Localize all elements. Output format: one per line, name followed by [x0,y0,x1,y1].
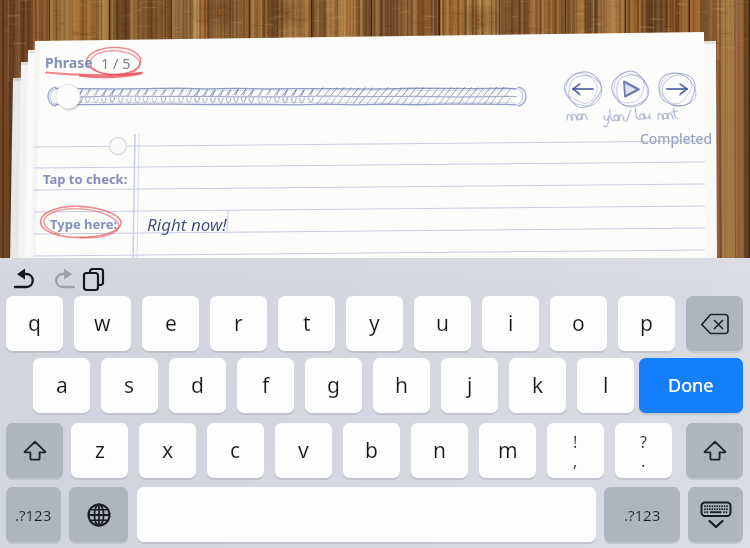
staticText: m [498,436,518,465]
button[interactable]: Redo [47,266,77,292]
staticText: d [191,371,204,400]
staticText: x [162,436,174,465]
staticText: u [436,309,449,338]
button[interactable]: s [101,358,158,413]
staticText: b [365,436,378,465]
button[interactable]: .?123 [6,487,61,542]
staticText: .?123 [624,505,661,525]
button[interactable]: x [139,423,196,478]
staticText: f [262,371,270,400]
staticText: k [532,371,544,400]
staticText: w [94,309,111,338]
staticText: Right now! [147,213,227,236]
button[interactable]: m [479,423,536,478]
staticText: o [572,309,585,338]
button[interactable]: Done [639,358,743,413]
staticText: . [641,450,646,472]
button[interactable]: h [373,358,430,413]
button[interactable]: n [411,423,468,478]
staticText: n [433,436,446,465]
staticText: ! [573,431,578,453]
button[interactable]: .?123 [604,487,680,542]
button[interactable]: Undo [12,266,42,292]
staticText: i [508,309,514,338]
button[interactable]: f [237,358,294,413]
button[interactable]: u [414,296,471,351]
button[interactable]: c [207,423,264,478]
button[interactable]: o [550,296,607,351]
staticText: a [56,371,68,400]
staticText: e [165,309,177,338]
button[interactable]: v [275,423,332,478]
button[interactable]: Hide keyboard [688,487,743,542]
staticText: Done [668,373,714,398]
staticText: Completed [640,129,713,148]
button[interactable]: d [169,358,226,413]
staticText: , [573,450,578,472]
staticText: t [303,309,311,338]
button[interactable]: b [343,423,400,478]
button[interactable]: k [509,358,566,413]
staticText: h [395,371,408,400]
staticText: 1 / 5 [101,53,131,73]
button[interactable]: t [278,296,335,351]
staticText: v [298,436,309,465]
staticText: s [124,371,135,400]
staticText: g [327,371,340,400]
button[interactable]: Backspace [686,296,743,351]
button[interactable]: q [6,296,63,351]
button[interactable]: z [71,423,128,478]
button[interactable]: ! [547,423,604,478]
button[interactable]: Change language [69,487,128,542]
staticText: z [95,436,105,465]
button[interactable]: a [33,358,90,413]
staticText: Tap to check: [43,170,128,188]
button[interactable]: i [482,296,539,351]
button[interactable]: p [618,296,675,351]
staticText: r [234,309,243,338]
button[interactable]: Paste [82,266,110,292]
staticText: q [28,309,41,338]
button[interactable]: ? [615,423,672,478]
staticText: j [467,371,473,400]
button[interactable]: j [441,358,498,413]
button[interactable]: Shift [686,423,743,478]
staticText: ? [640,431,647,453]
staticText: Phrase [45,53,93,72]
staticText: p [640,309,653,338]
staticText: c [230,436,241,465]
staticText: Type here: [50,215,118,233]
button[interactable]: y [346,296,403,351]
button[interactable]: l [577,358,634,413]
button[interactable]: e [142,296,199,351]
button[interactable]: Shift [6,423,63,478]
button[interactable]: g [305,358,362,413]
staticText: l [603,371,609,400]
button[interactable]: w [74,296,131,351]
staticText: y [369,309,380,338]
staticText: .?123 [15,505,52,525]
button[interactable]: r [210,296,267,351]
